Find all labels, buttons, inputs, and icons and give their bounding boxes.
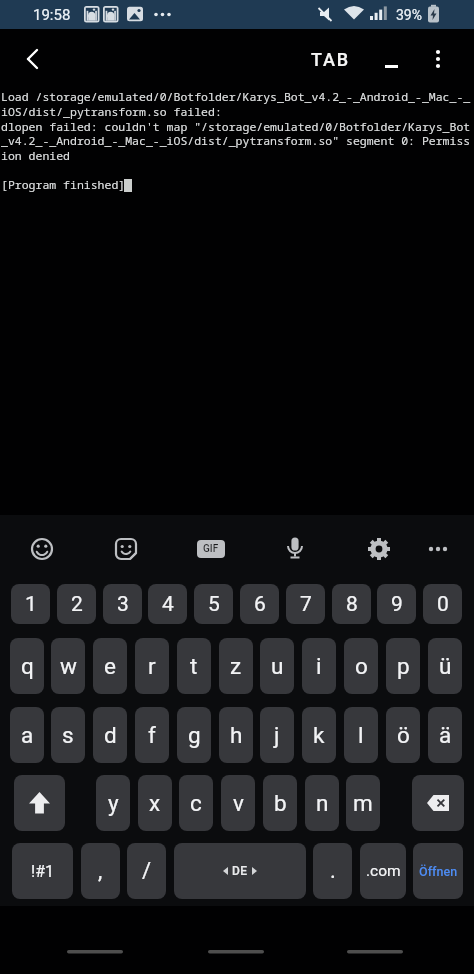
- staticText: e: [104, 653, 116, 679]
- button[interactable]: !#1: [12, 843, 73, 899]
- button[interactable]: f: [135, 707, 169, 763]
- button[interactable]: /: [127, 843, 166, 899]
- staticText: f: [148, 722, 156, 748]
- button[interactable]: 8: [332, 584, 371, 624]
- button[interactable]: k: [302, 707, 336, 763]
- staticText: /: [142, 858, 152, 884]
- staticText: .: [330, 858, 336, 884]
- button[interactable]: 0: [423, 584, 462, 624]
- button[interactable]: w: [51, 638, 85, 694]
- button[interactable]: TAB: [296, 40, 366, 78]
- button[interactable]: [24, 531, 60, 567]
- button[interactable]: 6: [240, 584, 279, 624]
- staticText: 3: [117, 592, 129, 617]
- button[interactable]: Öffnen: [413, 843, 463, 899]
- staticText: iOS/dist/_pytransform.so failed:: [1, 104, 222, 120]
- button[interactable]: t: [177, 638, 211, 694]
- staticText: z: [230, 653, 242, 679]
- button[interactable]: 5: [194, 584, 233, 624]
- staticText: u: [271, 653, 284, 679]
- button[interactable]: b: [263, 775, 297, 831]
- button[interactable]: m: [346, 775, 380, 831]
- staticText: 2: [71, 592, 83, 617]
- staticText: ,: [98, 858, 103, 884]
- button[interactable]: 9: [377, 584, 416, 624]
- button[interactable]: g: [177, 707, 211, 763]
- staticText: b: [274, 790, 287, 816]
- staticText: Öffnen: [419, 864, 458, 879]
- button[interactable]: i: [302, 638, 336, 694]
- button[interactable]: ,: [81, 843, 120, 899]
- button[interactable]: DE: [174, 843, 306, 899]
- button[interactable]: [277, 531, 313, 567]
- button[interactable]: r: [135, 638, 169, 694]
- button[interactable]: u: [260, 638, 294, 694]
- staticText: j: [274, 722, 280, 748]
- button[interactable]: .: [313, 843, 352, 899]
- staticText: 5: [208, 592, 220, 617]
- button[interactable]: [412, 775, 464, 831]
- staticText: d: [104, 722, 117, 748]
- staticText: 39%: [396, 7, 422, 23]
- button[interactable]: d: [93, 707, 127, 763]
- staticText: !#1: [31, 862, 54, 881]
- button[interactable]: h: [219, 707, 253, 763]
- button[interactable]: 7: [286, 584, 325, 624]
- staticText: i: [316, 653, 322, 679]
- staticText: p: [397, 653, 410, 679]
- staticText: a: [21, 722, 34, 748]
- staticText: TAB: [311, 49, 351, 70]
- button[interactable]: n: [305, 775, 339, 831]
- button[interactable]: [372, 40, 410, 78]
- button[interactable]: v: [221, 775, 255, 831]
- button[interactable]: 1: [11, 584, 50, 624]
- button[interactable]: a: [10, 707, 44, 763]
- button[interactable]: 3: [103, 584, 142, 624]
- button[interactable]: ö: [386, 707, 420, 763]
- button[interactable]: GIF: [197, 540, 225, 558]
- button[interactable]: z: [219, 638, 253, 694]
- button[interactable]: ä: [428, 707, 462, 763]
- button[interactable]: ü: [428, 638, 462, 694]
- staticText: 1: [25, 592, 37, 617]
- button[interactable]: 2: [57, 584, 96, 624]
- staticText: m: [353, 790, 373, 816]
- staticText: [Program finished]: [1, 177, 126, 193]
- button[interactable]: j: [260, 707, 294, 763]
- staticText: r: [148, 653, 156, 679]
- button[interactable]: q: [10, 638, 44, 694]
- staticText: 6: [254, 592, 266, 617]
- staticText: x: [149, 790, 161, 816]
- staticText: ä: [439, 722, 452, 748]
- button[interactable]: e: [93, 638, 127, 694]
- staticText: .com: [366, 862, 401, 880]
- staticText: 19:58: [33, 6, 71, 24]
- button[interactable]: [361, 531, 397, 567]
- staticText: ö: [397, 722, 410, 748]
- button[interactable]: c: [179, 775, 213, 831]
- staticText: ion denied: [1, 148, 70, 164]
- button[interactable]: 4: [148, 584, 187, 624]
- staticText: 9: [391, 592, 403, 617]
- staticText: w: [60, 653, 77, 679]
- button[interactable]: [420, 40, 456, 78]
- button[interactable]: [12, 40, 52, 78]
- staticText: 7: [300, 592, 312, 617]
- button[interactable]: l: [344, 707, 378, 763]
- button[interactable]: .com: [360, 843, 406, 899]
- button[interactable]: [108, 531, 144, 567]
- staticText: 0: [437, 592, 449, 617]
- button[interactable]: o: [344, 638, 378, 694]
- staticText: Load /storage/emulated/0/Botfolder/Karys…: [1, 89, 471, 105]
- staticText: g: [188, 722, 201, 748]
- staticText: y: [108, 790, 119, 816]
- button[interactable]: y: [96, 775, 130, 831]
- staticText: 4: [162, 592, 174, 617]
- button[interactable]: x: [138, 775, 172, 831]
- button[interactable]: [14, 775, 65, 831]
- button[interactable]: [420, 531, 456, 567]
- staticText: c: [190, 790, 202, 816]
- button[interactable]: s: [51, 707, 85, 763]
- button[interactable]: p: [386, 638, 420, 694]
- staticText: o: [355, 653, 368, 679]
